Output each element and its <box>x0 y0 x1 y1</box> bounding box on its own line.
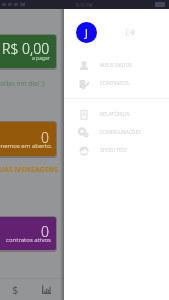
staticText: todas em dia! :) <box>0 79 45 88</box>
staticText: tenemos em aberto. <box>0 142 51 150</box>
staticText: RELATÓRIOS <box>100 111 130 118</box>
button[interactable]: SPEED TEST <box>64 141 169 159</box>
staticText: a pagar <box>32 55 50 62</box>
staticText: J <box>85 26 88 40</box>
button[interactable]: RELATÓRIOS <box>64 105 169 123</box>
staticText: 8:16 PM <box>76 2 93 8</box>
button[interactable]: Logout <box>120 22 141 43</box>
button[interactable]: Messages <box>62 278 93 300</box>
staticText: $ <box>12 282 19 297</box>
staticText: 0 <box>41 222 49 241</box>
staticText: R$ 0,00 <box>2 39 50 58</box>
staticText: CONFIGURAÇÕES <box>100 129 142 136</box>
button[interactable]: Payments <box>0 278 31 300</box>
staticText: CONTRATOS <box>100 80 129 87</box>
staticText: MEUS DADOS <box>100 62 133 69</box>
button[interactable]: CONFIGURAÇÕES <box>64 123 169 141</box>
staticText: 0 <box>41 128 49 147</box>
button[interactable]: R$ 0,00 <box>0 35 56 68</box>
button[interactable]: CONTRATOS <box>64 74 169 92</box>
button[interactable]: 0 <box>0 217 56 250</box>
button[interactable]: MEUS DADOS <box>64 56 169 74</box>
staticText: SPEED TEST <box>100 147 128 154</box>
staticText: SUAS MENSAGENS <box>0 165 53 175</box>
button[interactable]: Reports <box>31 278 62 300</box>
button[interactable]: Profile <box>76 22 97 43</box>
button[interactable]: 0 <box>0 122 56 156</box>
staticText: contratos ativos <box>6 236 51 244</box>
